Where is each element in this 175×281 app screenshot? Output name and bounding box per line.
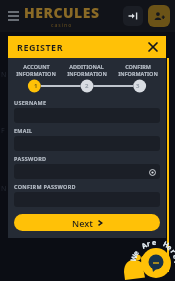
staticText: CONFIRM (125, 63, 151, 70)
staticText: INFORMATION (67, 70, 107, 77)
staticText: CONFIRM PASSWORD (14, 183, 76, 190)
staticText: A (140, 240, 149, 252)
staticText: EMAIL (14, 127, 33, 134)
button[interactable]: Menu (5, 8, 21, 24)
button[interactable]: Close (146, 40, 160, 54)
button[interactable]: Log in (123, 6, 143, 26)
staticText: e (131, 248, 142, 258)
staticText: e (164, 243, 175, 253)
button[interactable]: REGISTER (8, 36, 166, 58)
staticText: H (161, 239, 171, 251)
staticText: e (170, 253, 175, 261)
staticText: INFORMATION (16, 70, 56, 77)
button[interactable]: Show password (14, 164, 160, 179)
staticText: 1 (34, 82, 38, 90)
staticText: N (1, 70, 7, 80)
staticText: r (146, 239, 152, 249)
staticText: ADDITIONAL (69, 63, 104, 70)
button[interactable]: Next (14, 214, 160, 231)
staticText: REGISTER (17, 41, 64, 53)
staticText (134, 245, 142, 253)
staticText: 3 (136, 82, 140, 90)
button[interactable]: Chat - We Are Here (124, 230, 174, 280)
staticText: N (1, 184, 7, 194)
button[interactable]: Show password (148, 168, 156, 176)
staticText: ! (171, 260, 175, 264)
staticText: HERCULES (24, 3, 100, 22)
staticText: casino (51, 22, 73, 29)
staticText (157, 239, 161, 249)
staticText: Next (72, 217, 93, 229)
staticText: ACCOUNT (23, 63, 50, 70)
staticText: USERNAME (14, 99, 47, 106)
staticText: F (1, 126, 5, 136)
staticText: W (129, 253, 140, 263)
staticText: INFORMATION (118, 70, 158, 77)
button[interactable]: Register (148, 5, 170, 27)
staticText: 2 (85, 82, 89, 90)
staticText: r (168, 247, 175, 257)
staticText: e (152, 238, 157, 248)
staticText: PASSWORD (14, 155, 47, 162)
